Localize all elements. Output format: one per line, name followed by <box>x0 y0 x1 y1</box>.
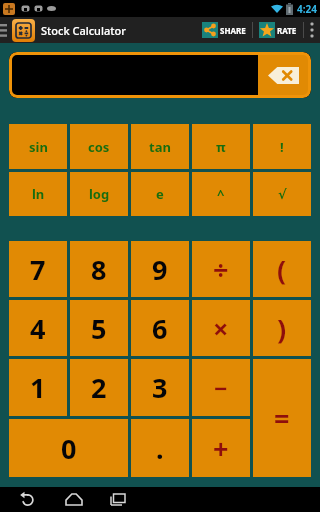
staticText: 8 <box>91 251 107 288</box>
button[interactable]: × <box>192 300 250 356</box>
staticText: × <box>213 310 229 347</box>
staticText: RATE <box>277 25 297 36</box>
button[interactable]: e <box>131 172 189 216</box>
button[interactable] <box>258 55 308 95</box>
staticText: ^ <box>217 185 225 203</box>
staticText: = <box>274 400 290 437</box>
staticText: tan <box>149 138 171 156</box>
button[interactable]: 6 <box>131 300 189 356</box>
button[interactable]: + <box>192 419 250 477</box>
button[interactable]: 5 <box>70 300 128 356</box>
staticText: √ <box>278 187 287 202</box>
staticText: π <box>216 138 226 156</box>
button[interactable]: 1 <box>9 359 67 416</box>
button[interactable] <box>19 493 36 507</box>
button[interactable]: SHARE <box>200 17 248 43</box>
staticText: log <box>89 185 110 203</box>
staticText: ! <box>280 138 284 156</box>
button[interactable]: ) <box>253 300 311 356</box>
staticText: ln <box>32 185 45 203</box>
button[interactable]: √ <box>253 172 311 216</box>
button[interactable]: RATE <box>257 17 299 43</box>
button[interactable]: 4 <box>9 300 67 356</box>
button[interactable] <box>65 493 83 506</box>
button[interactable] <box>12 19 35 42</box>
button[interactable]: 3 <box>131 359 189 416</box>
staticText: 7 <box>30 251 46 288</box>
staticText: ) <box>277 310 287 347</box>
button[interactable]: 7 <box>9 241 67 297</box>
staticText: . <box>156 430 164 467</box>
button[interactable]: − <box>192 359 250 416</box>
staticText: 2 <box>91 369 107 406</box>
staticText: cos <box>88 138 110 156</box>
staticText: 4:24 <box>297 2 317 16</box>
button[interactable]: 2 <box>70 359 128 416</box>
button[interactable]: 0 <box>9 419 128 477</box>
button[interactable]: cos <box>70 124 128 169</box>
staticText: SHARE <box>220 25 246 36</box>
staticText: 9 <box>152 251 168 288</box>
staticText: 0 <box>61 430 77 467</box>
button[interactable]: 9 <box>131 241 189 297</box>
button[interactable]: tan <box>131 124 189 169</box>
button[interactable]: log <box>70 172 128 216</box>
button[interactable] <box>110 493 126 506</box>
staticText: 1 <box>30 369 46 406</box>
button[interactable]: ( <box>253 241 311 297</box>
staticText: 4 <box>30 310 46 347</box>
staticText: Stock Calculator <box>41 23 126 38</box>
button[interactable]: π <box>192 124 250 169</box>
button[interactable]: 8 <box>70 241 128 297</box>
button[interactable]: . <box>131 419 189 477</box>
button[interactable]: ^ <box>192 172 250 216</box>
button[interactable]: ÷ <box>192 241 250 297</box>
staticText: 5 <box>91 310 107 347</box>
button[interactable] <box>310 22 314 38</box>
staticText: e <box>156 185 164 203</box>
staticText: sin <box>29 138 48 156</box>
button[interactable]: sin <box>9 124 67 169</box>
button[interactable]: ! <box>253 124 311 169</box>
staticText: 6 <box>152 310 168 347</box>
staticText: ( <box>277 251 287 288</box>
button[interactable]: ln <box>9 172 67 216</box>
staticText: 3 <box>152 369 168 406</box>
button[interactable]: = <box>253 359 311 477</box>
staticText: − <box>214 372 228 403</box>
staticText: ÷ <box>213 251 229 288</box>
staticText: + <box>213 430 229 467</box>
